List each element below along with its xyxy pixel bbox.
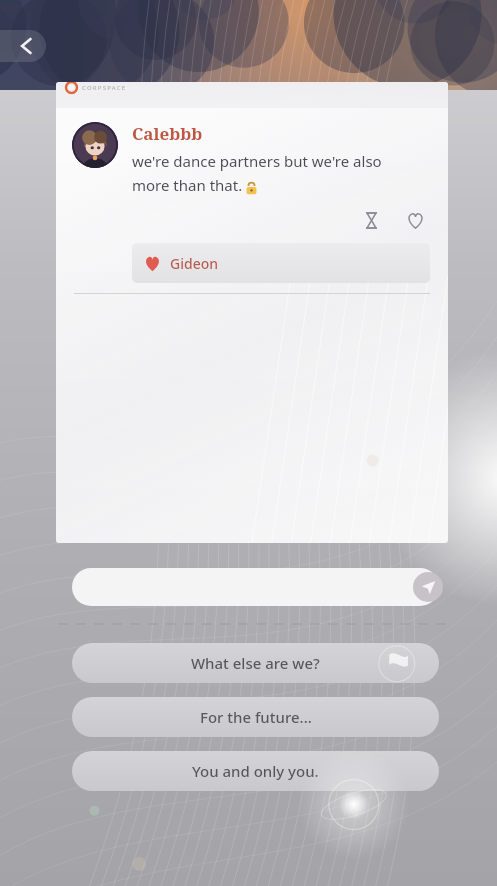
- button[interactable]: Back: [0, 30, 46, 62]
- button[interactable]: For the future...: [72, 697, 439, 737]
- button[interactable]: Like: [400, 205, 430, 235]
- staticText: For the future...: [200, 707, 312, 727]
- button[interactable]: What else are we?: [72, 643, 439, 683]
- staticText: more than that.: [132, 175, 243, 195]
- button[interactable]: Profile photo: [72, 122, 118, 168]
- staticText: You and only you.: [192, 761, 319, 781]
- button[interactable]: Send: [413, 572, 443, 602]
- button[interactable]: Gideon: [132, 243, 430, 283]
- staticText: What else are we?: [191, 653, 320, 673]
- staticText: Calebbb: [132, 122, 203, 145]
- button[interactable]: Timer: [356, 205, 386, 235]
- staticText: CORPSPACE: [82, 84, 127, 92]
- staticText: Gideon: [170, 254, 219, 273]
- button[interactable]: You and only you.: [72, 751, 439, 791]
- button[interactable]: Message input: [72, 568, 439, 606]
- staticText: we're dance partners but we're also: [132, 151, 382, 171]
